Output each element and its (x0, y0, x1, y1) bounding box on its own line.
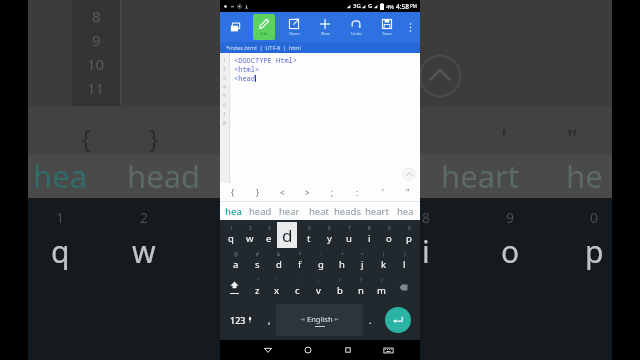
staticText: 8 (92, 6, 101, 26)
button[interactable]: ' (267, 274, 287, 300)
staticText: Edit (260, 31, 268, 37)
button[interactable]: " (247, 274, 267, 300)
staticText: - (320, 251, 322, 257)
button[interactable]: 6 (319, 222, 339, 248)
button[interactable]: Open (280, 12, 308, 42)
staticText: > (305, 187, 310, 198)
button[interactable]: Save (373, 12, 401, 42)
button[interactable]: } (245, 183, 270, 201)
staticText: <DOOCTYPE Html> (234, 56, 297, 65)
staticText: hear (279, 205, 300, 218)
staticText: 1 (223, 57, 226, 64)
button[interactable]: Edit (250, 12, 278, 42)
button[interactable]: . (363, 302, 377, 338)
staticText: Save (382, 31, 392, 37)
staticText: he (566, 155, 603, 197)
button[interactable]: ; (320, 183, 345, 201)
staticText: head (249, 205, 272, 218)
button[interactable]: Shift (221, 274, 247, 300)
button[interactable]: Home (288, 340, 328, 360)
staticText: PM (410, 3, 417, 9)
button[interactable]: heat (304, 202, 333, 220)
staticText: ► (333, 315, 340, 323)
button[interactable]: & (268, 248, 289, 274)
staticText: e (266, 232, 272, 245)
staticText: 3 (268, 225, 271, 231)
button[interactable]: 5 (299, 222, 319, 248)
staticText: * (299, 251, 302, 257)
button[interactable]: Back (248, 340, 288, 360)
staticText: 2 (223, 66, 226, 73)
button[interactable]: ) (394, 248, 415, 274)
staticText: ◄ (300, 315, 307, 323)
button[interactable]: * (289, 248, 310, 274)
button[interactable]: ? (350, 274, 371, 300)
staticText: o (386, 232, 392, 245)
button[interactable]: - (310, 248, 331, 274)
button[interactable]: : (287, 274, 308, 300)
button[interactable]: 7 (339, 222, 359, 248)
button[interactable]: 0 (399, 222, 419, 248)
button[interactable]: New (311, 12, 339, 42)
button[interactable]: 2 (240, 222, 259, 248)
button[interactable]: 3 (259, 222, 279, 248)
button[interactable]: { (220, 183, 245, 201)
button[interactable]: Undo (342, 12, 370, 42)
button[interactable]: ' (370, 183, 395, 201)
button[interactable]: Windows (224, 12, 246, 42)
button[interactable]: , (262, 302, 276, 338)
button[interactable]: = (352, 248, 373, 274)
staticText: / (381, 277, 383, 283)
staticText: c (295, 284, 300, 297)
staticText: d (276, 258, 282, 271)
staticText: " (406, 187, 410, 198)
staticText: 7 (223, 111, 226, 118)
button[interactable]: heads (333, 202, 362, 220)
button[interactable]: + (331, 248, 352, 274)
button[interactable]: > (295, 183, 320, 201)
button[interactable]: ( (373, 248, 394, 274)
staticText: # (256, 251, 259, 257)
button[interactable]: Enter (385, 307, 411, 333)
button[interactable]: @ (225, 248, 247, 274)
staticText: : (356, 187, 359, 198)
button[interactable]: Backspace (392, 274, 419, 300)
button[interactable]: hea (391, 202, 420, 220)
button[interactable]: 9 (379, 222, 399, 248)
button[interactable]: : (345, 183, 370, 201)
button[interactable]: head (246, 202, 275, 220)
staticText: s (255, 258, 260, 271)
button[interactable]: < (270, 183, 295, 201)
button[interactable]: hea (220, 202, 246, 220)
staticText: x (274, 284, 280, 297)
button[interactable]: ; (308, 274, 329, 300)
button[interactable]: 1 (221, 222, 240, 248)
staticText: heads (334, 205, 361, 218)
button[interactable]: hear (275, 202, 304, 220)
staticText: 0 (590, 208, 599, 227)
button[interactable]: " (395, 183, 420, 201)
staticText: 8 (422, 208, 431, 227)
button[interactable]: 8 (359, 222, 379, 248)
button[interactable]: heart (362, 202, 391, 220)
button[interactable]: Scroll up (402, 167, 416, 181)
button[interactable]: ! (329, 274, 350, 300)
button[interactable]: ◄ (276, 304, 363, 336)
staticText: ; (331, 187, 334, 198)
button[interactable]: Recents (328, 340, 368, 360)
staticText: ! (339, 277, 341, 283)
staticText: < (280, 187, 285, 198)
button[interactable]: # (247, 248, 268, 274)
staticText: ' (501, 120, 507, 154)
button[interactable]: More options (404, 12, 416, 42)
button[interactable]: Keyboard (368, 340, 408, 360)
button[interactable]: / (371, 274, 392, 300)
staticText: heat (309, 205, 329, 218)
staticText: b (337, 284, 343, 297)
button[interactable]: 4 (279, 222, 299, 248)
staticText: 7 (348, 225, 351, 231)
button[interactable]: 123 (222, 302, 262, 338)
staticText: { (231, 187, 235, 198)
staticText: 6 (223, 102, 226, 109)
staticText: 9 (92, 30, 101, 50)
